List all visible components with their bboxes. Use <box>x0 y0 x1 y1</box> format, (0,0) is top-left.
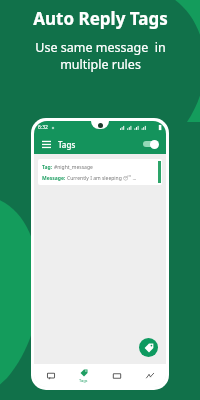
button[interactable]: Add tag <box>139 338 158 357</box>
staticText: Auto Reply Tags <box>33 7 168 30</box>
button[interactable]: Toggle tags <box>142 139 160 149</box>
staticText: Currently I am sleeping 😴 ... <box>67 175 137 182</box>
button[interactable]: Tag: <box>38 159 162 185</box>
staticText: Tags <box>79 378 88 383</box>
staticText: Use same message in multiple rules <box>35 39 166 73</box>
staticText: Tag: <box>42 164 54 171</box>
staticText: #night_message <box>54 164 93 171</box>
button[interactable]: Statistics <box>133 364 166 387</box>
button[interactable]: Templates <box>100 364 133 387</box>
staticText: Tags <box>58 139 76 150</box>
staticText: Message: <box>42 175 67 182</box>
button[interactable]: Open navigation menu <box>40 138 52 150</box>
button[interactable]: Tags <box>67 364 100 387</box>
staticText: 6:32 <box>38 124 48 131</box>
button[interactable]: Messages <box>34 364 67 387</box>
